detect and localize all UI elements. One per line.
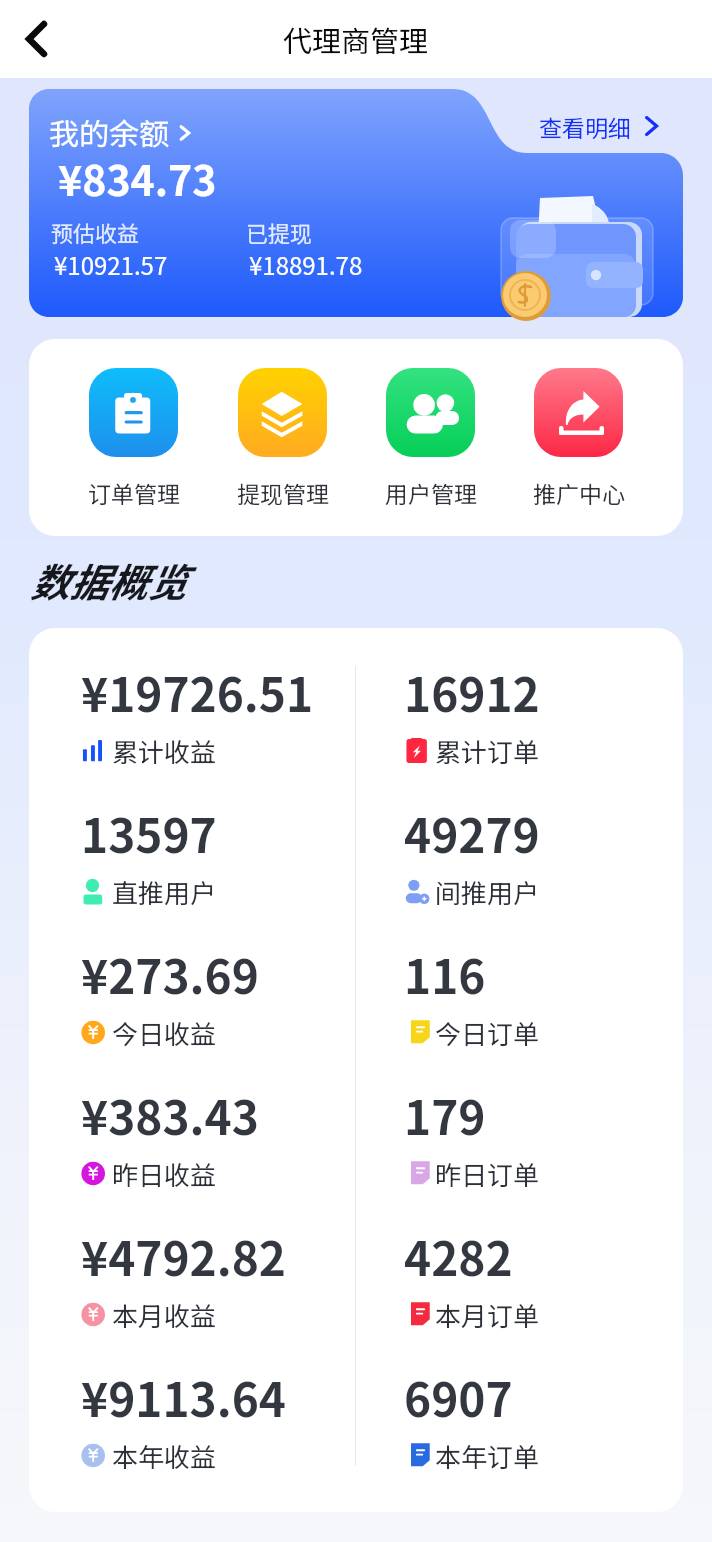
staticText: 提现管理 <box>237 476 329 509</box>
staticText: 本年订单 <box>435 1437 540 1475</box>
button[interactable]: ¥19726.51 <box>65 645 345 775</box>
staticText: ¥10921.57 <box>54 247 168 282</box>
staticText: ¥383.43 <box>81 1082 259 1149</box>
staticText: 数据概览 <box>30 552 187 608</box>
staticText: ¥834.73 <box>58 148 217 207</box>
staticText: 16912 <box>404 659 540 726</box>
staticText: 推广中心 <box>533 476 625 509</box>
staticText: 本年收益 <box>112 1437 217 1475</box>
staticText: 4282 <box>404 1223 513 1290</box>
staticText: 间推用户 <box>435 873 540 911</box>
staticText: ¥19726.51 <box>81 659 314 726</box>
button[interactable]: 提现管理 <box>211 368 354 509</box>
staticText: ¥4792.82 <box>81 1223 286 1290</box>
staticText: ¥273.69 <box>81 941 259 1008</box>
button[interactable]: 订单管理 <box>62 368 205 509</box>
staticText: 昨日收益 <box>112 1155 217 1193</box>
staticText: 49279 <box>404 800 540 867</box>
button[interactable]: 查看明细 <box>510 94 691 158</box>
staticText: 代理商管理 <box>283 18 429 60</box>
button[interactable]: 6907 <box>388 1350 668 1480</box>
button[interactable]: Back <box>6 9 66 69</box>
button[interactable]: 4282 <box>388 1209 668 1339</box>
button[interactable]: ¥4792.82 <box>65 1209 345 1339</box>
staticText: 我的余额 <box>49 110 169 153</box>
staticText: 直推用户 <box>112 873 217 911</box>
staticText: 已提现 <box>246 216 313 248</box>
staticText: 昨日订单 <box>435 1155 540 1193</box>
staticText: 116 <box>404 941 486 1008</box>
staticText: ¥18891.78 <box>249 247 363 282</box>
staticText: 6907 <box>404 1364 513 1431</box>
staticText: 今日收益 <box>112 1014 217 1052</box>
button[interactable]: 179 <box>388 1068 668 1198</box>
staticText: 预估收益 <box>51 216 140 248</box>
button[interactable]: ¥273.69 <box>65 927 345 1057</box>
button[interactable]: ¥383.43 <box>65 1068 345 1198</box>
button[interactable]: ¥9113.64 <box>65 1350 345 1480</box>
button[interactable]: 我的余额 <box>49 110 197 153</box>
staticText: 179 <box>404 1082 486 1149</box>
staticText: 订单管理 <box>88 476 180 509</box>
staticText: 今日订单 <box>435 1014 540 1052</box>
staticText: 用户管理 <box>385 476 477 509</box>
button[interactable]: 116 <box>388 927 668 1057</box>
button[interactable]: 13597 <box>65 786 345 916</box>
staticText: 本月订单 <box>435 1296 540 1334</box>
staticText: ¥9113.64 <box>81 1364 286 1431</box>
button[interactable]: 推广中心 <box>507 368 650 509</box>
button[interactable]: 49279 <box>388 786 668 916</box>
staticText: 累计收益 <box>112 732 217 770</box>
staticText: 累计订单 <box>435 732 540 770</box>
staticText: 查看明细 <box>539 110 631 143</box>
staticText: 13597 <box>81 800 217 867</box>
button[interactable]: 用户管理 <box>359 368 502 509</box>
staticText: 本月收益 <box>112 1296 217 1334</box>
button[interactable]: 16912 <box>388 645 668 775</box>
